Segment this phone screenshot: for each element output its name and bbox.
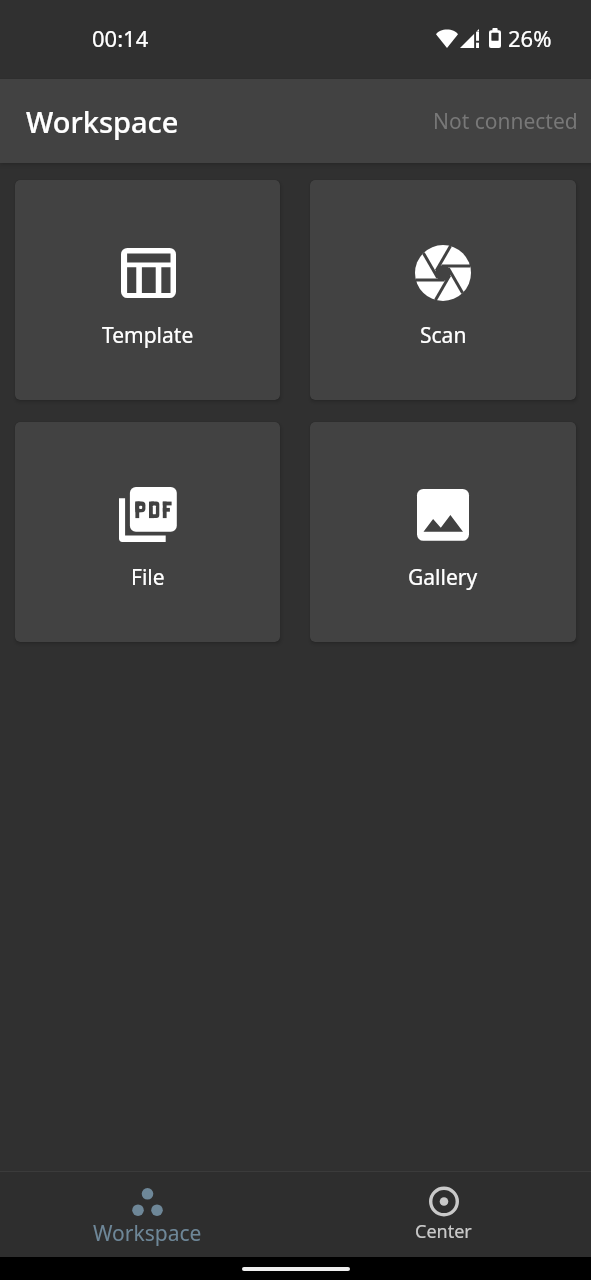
- staticText: File: [131, 563, 165, 592]
- button[interactable]: Template: [15, 180, 280, 400]
- button[interactable]: File: [15, 422, 280, 642]
- button[interactable]: Workspace: [0, 1171, 295, 1257]
- staticText: Center: [415, 1219, 472, 1244]
- staticText: Scan: [420, 321, 467, 350]
- staticText: 26%: [508, 23, 552, 53]
- button[interactable]: Scan: [310, 180, 576, 400]
- button[interactable]: Gallery: [310, 422, 576, 642]
- staticText: Template: [102, 321, 194, 350]
- staticText: Workspace: [93, 1219, 202, 1248]
- staticText: 00:14: [92, 23, 149, 53]
- button[interactable]: Center: [295, 1171, 591, 1257]
- staticText: Gallery: [408, 563, 478, 592]
- staticText: Workspace: [26, 102, 179, 141]
- staticText: Not connected: [433, 107, 578, 136]
